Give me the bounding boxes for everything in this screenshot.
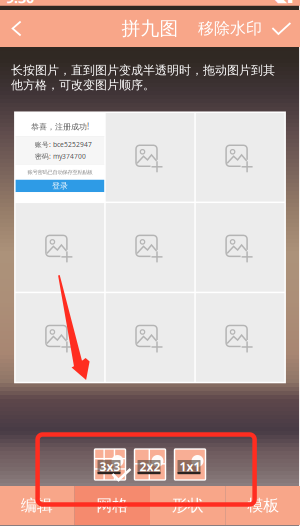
staticText: ◥◣▮ [269, 0, 294, 4]
staticText: 1x1 [179, 458, 200, 474]
button[interactable]: Add photo [16, 293, 104, 382]
button[interactable]: Add photo [196, 293, 284, 382]
button[interactable]: 1x1 layout [174, 449, 205, 480]
button[interactable]: Add photo [106, 113, 194, 202]
button[interactable]: Add photo [16, 203, 104, 292]
staticText: 2x2 [139, 458, 160, 474]
button[interactable]: Add photo [106, 293, 194, 382]
staticText: 拼九图 [121, 17, 178, 40]
button[interactable]: Add photo [196, 203, 284, 292]
staticText: 形状 [172, 496, 204, 515]
staticText: 编辑 [21, 496, 53, 515]
staticText: 9:30 [6, 0, 34, 7]
staticText: 账号: bce5252947 [35, 140, 92, 149]
staticText: 密码: my374700 [35, 152, 86, 161]
button[interactable]: 2x2 layout [134, 449, 165, 480]
staticText: 账号密码已自动保存至粘贴板 [27, 169, 92, 175]
staticText: 长按图片，直到图片变成半透明时，拖动图片到其他方格，可改变图片顺序。 [11, 63, 275, 92]
button[interactable]: Done [264, 10, 299, 47]
staticText: 3x3 [99, 458, 120, 474]
staticText: 网格 [96, 496, 128, 515]
button[interactable]: 编辑 [0, 486, 74, 525]
staticText: 登录 [52, 181, 68, 191]
button[interactable]: Back [0, 10, 34, 47]
staticText: 恭喜，注册成功! [31, 121, 89, 132]
staticText: 移除水印 [198, 19, 262, 38]
button[interactable]: 形状 [150, 486, 225, 525]
button[interactable]: Add photo [196, 113, 284, 202]
button[interactable]: 模板 [225, 486, 300, 525]
button[interactable]: Add photo [106, 203, 194, 292]
button[interactable]: 3x3 layout [94, 449, 125, 480]
staticText: 模板 [247, 496, 279, 515]
button[interactable]: 网格 [75, 486, 150, 525]
button[interactable]: 移除水印 [196, 10, 264, 47]
